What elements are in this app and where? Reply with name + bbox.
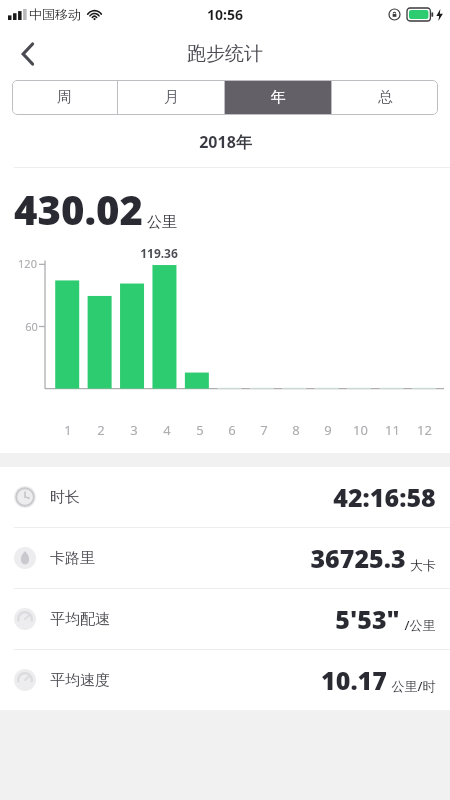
staticText: 10: [353, 421, 368, 439]
button[interactable]: 卡路里: [0, 528, 450, 588]
staticText: 5'53": [335, 602, 400, 636]
staticText: 总: [378, 88, 393, 107]
button[interactable]: 平均配速: [0, 589, 450, 649]
staticText: 119.36: [140, 245, 178, 261]
staticText: 周: [57, 88, 72, 107]
staticText: 年: [271, 88, 286, 107]
staticText: 时长: [50, 488, 80, 507]
staticText: 7: [260, 421, 268, 439]
staticText: 月: [164, 88, 179, 107]
staticText: 11: [385, 421, 400, 439]
staticText: 10.17: [321, 663, 387, 697]
staticText: 大卡: [410, 557, 436, 573]
button[interactable]: 年: [225, 80, 331, 115]
staticText: 4: [163, 421, 171, 439]
staticText: 2018年: [199, 131, 252, 153]
button[interactable]: Back: [6, 32, 50, 76]
staticText: 36725.3: [310, 541, 406, 575]
button[interactable]: 总: [332, 80, 438, 115]
staticText: 公里: [147, 213, 177, 232]
staticText: 60: [25, 319, 38, 334]
staticText: 120: [18, 256, 37, 271]
staticText: 6: [228, 421, 236, 439]
staticText: 5: [196, 421, 204, 439]
staticText: 12: [417, 421, 432, 439]
button[interactable]: 时长: [0, 467, 450, 527]
staticText: 平均配速: [50, 610, 110, 629]
staticText: 9: [324, 421, 332, 439]
staticText: 10:56: [207, 5, 243, 24]
button[interactable]: 平均速度: [0, 650, 450, 710]
staticText: 平均速度: [50, 671, 110, 690]
staticText: 42:16:58: [333, 480, 436, 514]
staticText: 公里/时: [391, 677, 436, 695]
staticText: 3: [130, 421, 138, 439]
staticText: 2: [97, 421, 105, 439]
staticText: 跑步统计: [187, 42, 263, 66]
staticText: 8: [292, 421, 300, 439]
staticText: 中国移动: [29, 6, 81, 22]
staticText: 430.02: [14, 182, 143, 236]
button[interactable]: 月: [118, 80, 224, 115]
button[interactable]: 周: [12, 80, 117, 115]
staticText: /公里: [404, 616, 436, 634]
staticText: 1: [64, 421, 72, 439]
staticText: 卡路里: [50, 549, 95, 568]
